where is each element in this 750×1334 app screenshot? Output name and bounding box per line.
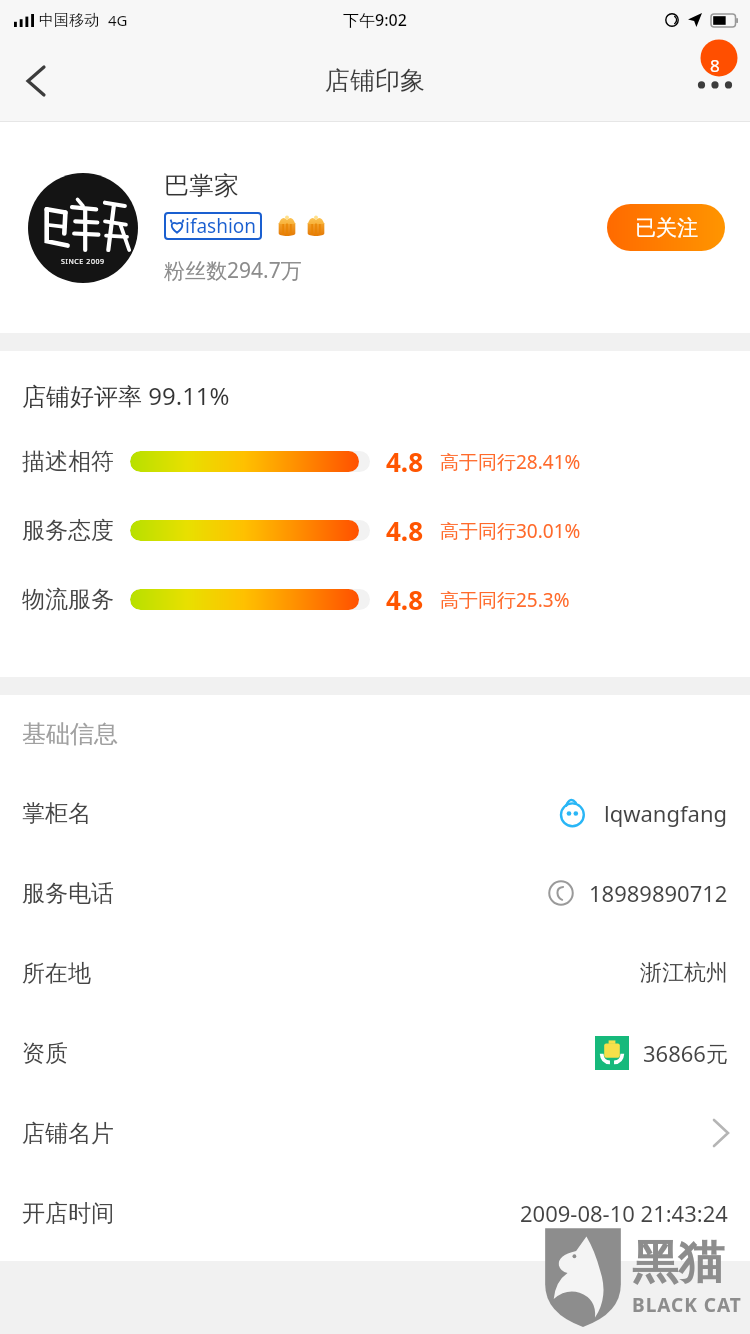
staticText: 2009-08-10 21:43:24 bbox=[520, 1198, 728, 1228]
button[interactable]: 已关注 bbox=[607, 204, 725, 251]
staticText: 粉丝数294.7万 bbox=[164, 256, 302, 285]
staticText: 开店时间 bbox=[22, 1199, 114, 1228]
staticText: 4G bbox=[108, 10, 128, 30]
button[interactable]: 掌柜名 bbox=[0, 773, 750, 853]
staticText: 基础信息 bbox=[22, 719, 118, 749]
staticText: 18989890712 bbox=[589, 878, 728, 908]
button[interactable]: 开店时间 bbox=[0, 1173, 750, 1253]
button[interactable]: More options bbox=[682, 51, 742, 111]
staticText: 服务态度 bbox=[22, 516, 114, 545]
staticText: 4.8 bbox=[386, 513, 424, 548]
staticText: 黑猫 bbox=[632, 1234, 724, 1292]
staticText: 4.8 bbox=[386, 582, 424, 617]
staticText: 中国移动 bbox=[39, 11, 99, 30]
button[interactable]: 店铺名片 bbox=[0, 1093, 750, 1173]
staticText: 已关注 bbox=[635, 215, 698, 241]
staticText: 8 bbox=[710, 54, 720, 77]
staticText: SINCE 2009 bbox=[61, 257, 105, 267]
staticText: 资质 bbox=[22, 1039, 68, 1068]
staticText: 掌柜名 bbox=[22, 799, 91, 828]
staticText: ifashion bbox=[185, 213, 257, 239]
button[interactable]: 资质 bbox=[0, 1013, 750, 1093]
staticText: 店铺名片 bbox=[22, 1119, 114, 1148]
staticText: 高于同行25.3% bbox=[440, 587, 570, 613]
staticText: 店铺印象 bbox=[325, 65, 425, 96]
staticText: 浙江杭州 bbox=[640, 959, 728, 987]
staticText: 高于同行30.01% bbox=[440, 518, 581, 544]
button[interactable]: 所在地 bbox=[0, 933, 750, 1013]
staticText: 4.8 bbox=[386, 444, 424, 479]
staticText: 店铺好评率 99.11% bbox=[22, 379, 230, 412]
staticText: 服务电话 bbox=[22, 879, 114, 908]
staticText: 描述相符 bbox=[22, 447, 114, 476]
staticText: BLACK CAT bbox=[632, 1292, 742, 1318]
staticText: lqwangfang bbox=[604, 798, 728, 828]
staticText: 物流服务 bbox=[22, 585, 114, 614]
staticText: 36866元 bbox=[643, 1038, 728, 1068]
staticText: 高于同行28.41% bbox=[440, 449, 581, 475]
button[interactable]: 服务电话 bbox=[0, 853, 750, 933]
staticText: 所在地 bbox=[22, 959, 91, 988]
staticText: 下午9:02 bbox=[343, 9, 407, 31]
staticText: 巴掌家 bbox=[164, 170, 239, 201]
button[interactable]: Back bbox=[8, 53, 64, 109]
